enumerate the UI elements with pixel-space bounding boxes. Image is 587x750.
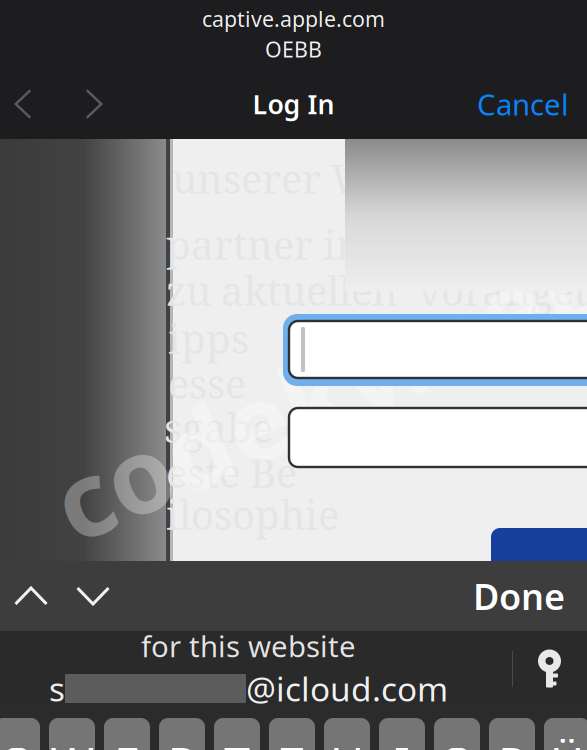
button[interactable]: Back — [0, 74, 54, 134]
staticText: Ü — [550, 733, 584, 750]
staticText: ilosophie — [166, 487, 339, 541]
button[interactable]: T — [214, 718, 260, 750]
button[interactable]: Next field — [62, 561, 124, 631]
staticText: Log In — [252, 86, 334, 122]
button[interactable]: Done — [473, 561, 587, 631]
button[interactable]: Ü — [544, 718, 587, 750]
staticText: Q — [0, 733, 35, 750]
staticText: @icloud.com — [246, 666, 448, 711]
staticText: sgabe des FFM Kundenjou — [164, 400, 587, 454]
staticText: O — [439, 733, 475, 750]
button[interactable]: Previous field — [0, 561, 62, 631]
staticText: s — [49, 666, 65, 711]
button[interactable]: W — [49, 718, 95, 750]
staticText: este Be — [166, 445, 297, 499]
staticText: U — [330, 733, 364, 750]
button[interactable]: Forward — [63, 74, 125, 134]
button[interactable]: Q — [0, 718, 40, 750]
button[interactable]: P — [489, 718, 535, 750]
staticText: T — [224, 733, 250, 750]
staticText: zu aktuellen vorangetrieben — [166, 263, 587, 317]
staticText: Done — [473, 572, 565, 620]
button[interactable]: U — [324, 718, 370, 750]
staticText: unserer We — [172, 151, 391, 205]
staticText: partner in de — [166, 217, 418, 271]
staticText: esse — [168, 356, 246, 410]
button[interactable]: R — [159, 718, 205, 750]
staticText: E — [114, 733, 140, 750]
staticText: Cancel — [477, 84, 569, 123]
button[interactable]: Passwords — [512, 631, 587, 706]
staticText: ipps — [168, 311, 249, 365]
button[interactable]: for this website — [0, 631, 497, 706]
staticText: P — [498, 733, 526, 750]
staticText: Z — [278, 733, 305, 750]
staticText: captive.apple.com — [202, 5, 385, 33]
staticText: I — [394, 733, 410, 750]
button[interactable]: Cancel — [449, 74, 569, 134]
button[interactable]: Z — [269, 718, 315, 750]
staticText: OEBB — [265, 35, 322, 63]
staticText: codekv.net — [34, 324, 587, 462]
staticText: Se — [534, 549, 587, 620]
staticText: for this website — [141, 626, 356, 665]
button[interactable]: I — [379, 718, 425, 750]
button[interactable]: O — [434, 718, 480, 750]
button[interactable]: E — [104, 718, 150, 750]
staticText: W — [50, 733, 93, 750]
staticText: R — [167, 733, 196, 750]
